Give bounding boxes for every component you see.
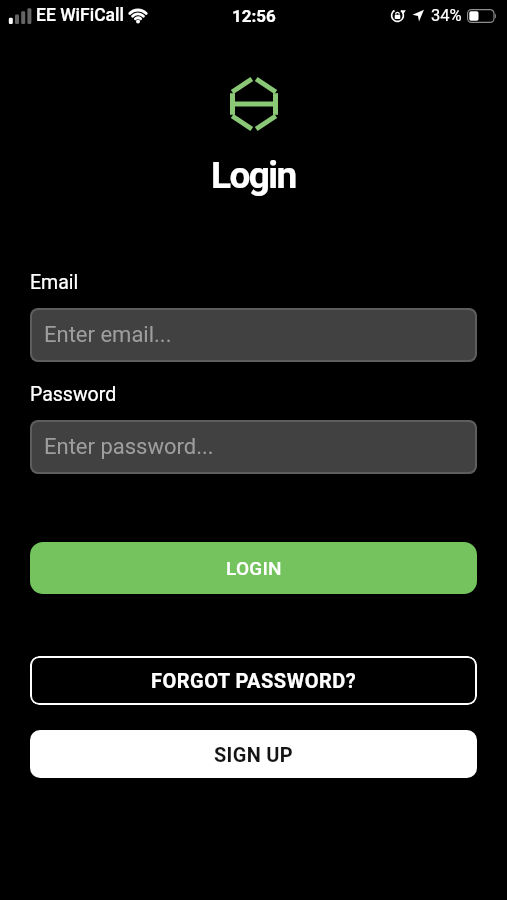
staticText: 34% bbox=[431, 6, 462, 25]
staticText: Enter password... bbox=[44, 434, 214, 460]
button[interactable]: FORGOT PASSWORD? bbox=[30, 656, 477, 705]
staticText: Password bbox=[30, 383, 117, 406]
staticText: LOGIN bbox=[226, 557, 282, 579]
staticText: FORGOT PASSWORD? bbox=[151, 669, 357, 692]
staticText: SIGN UP bbox=[214, 743, 294, 766]
staticText: Login bbox=[211, 154, 296, 197]
button[interactable]: SIGN UP bbox=[30, 730, 477, 778]
staticText: Enter email... bbox=[44, 322, 172, 348]
button[interactable]: Enter password... bbox=[30, 420, 477, 474]
button[interactable]: Enter email... bbox=[30, 308, 477, 362]
staticText: Email bbox=[30, 271, 79, 294]
staticText: 12:56 bbox=[232, 6, 276, 26]
staticText: EE WiFiCall bbox=[36, 5, 124, 26]
button[interactable]: LOGIN bbox=[30, 542, 477, 594]
